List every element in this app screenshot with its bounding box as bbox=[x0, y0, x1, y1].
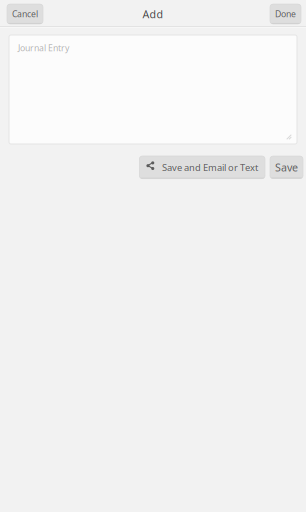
staticText: Done bbox=[275, 8, 296, 20]
button[interactable]: Done bbox=[270, 4, 301, 24]
staticText: Journal Entry bbox=[18, 42, 69, 54]
button[interactable]: Save bbox=[270, 156, 303, 179]
staticText: Add bbox=[142, 7, 163, 21]
button[interactable]: Cancel bbox=[7, 4, 43, 24]
button[interactable]: Save and Email or Text bbox=[139, 156, 265, 179]
staticText: Save bbox=[275, 160, 298, 175]
staticText: Cancel bbox=[12, 8, 38, 20]
button[interactable]: Journal Entry bbox=[9, 35, 297, 144]
staticText: Save and Email or Text bbox=[162, 161, 258, 174]
